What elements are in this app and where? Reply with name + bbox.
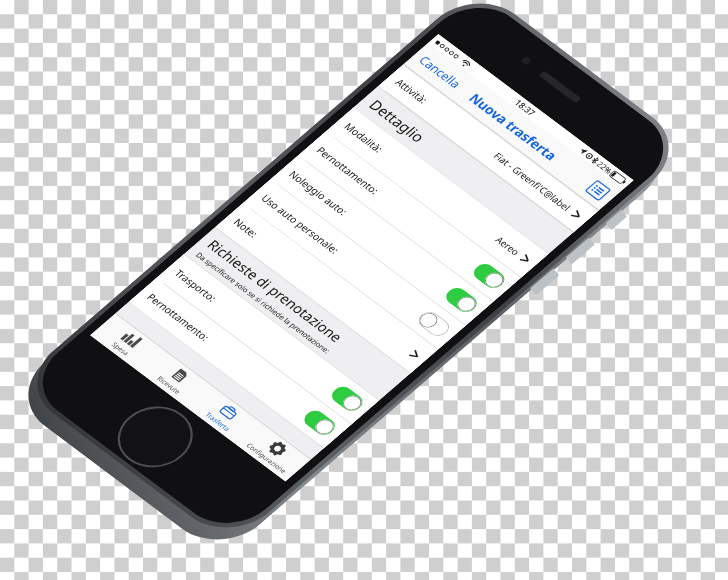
button[interactable]: Cancella (409, 47, 471, 97)
staticText: Aereo (493, 234, 523, 258)
staticText: Attività: (392, 76, 431, 106)
staticText: Trasporto: (172, 267, 220, 304)
button[interactable]: Pernottamento: (298, 132, 521, 302)
button[interactable]: Ricevute (139, 350, 213, 408)
button[interactable]: Attività: (378, 65, 598, 232)
staticText: Modalità: (341, 120, 386, 155)
button[interactable]: Trasporto: (156, 254, 379, 424)
button[interactable]: Configurazione (236, 423, 310, 481)
staticText: Note: (231, 216, 261, 240)
staticText: Nuova trasferta (465, 90, 562, 164)
button[interactable]: Interruttore (470, 261, 509, 291)
staticText: Spesa (110, 340, 131, 357)
staticText: Pernottamento: (314, 144, 382, 197)
staticText: Pernottamento: (144, 291, 213, 343)
button[interactable]: Home (105, 397, 205, 477)
button[interactable]: Lista (584, 179, 612, 202)
staticText: Richieste di prenotazione (202, 236, 347, 346)
button[interactable]: Note: (216, 203, 438, 373)
button[interactable]: Uso auto personale: (243, 180, 465, 349)
staticText: 22% (594, 159, 615, 176)
button[interactable]: Interruttore (300, 407, 339, 438)
staticText: Cancella (415, 53, 465, 91)
staticText: Fiat - Greenfi'C@label (491, 150, 574, 213)
staticText: Dettaglio (365, 95, 430, 146)
staticText: Ricevute (155, 374, 183, 396)
button[interactable]: Interruttore (414, 308, 453, 339)
staticText: 18:37 (512, 97, 539, 118)
staticText: Uso auto personale: (258, 192, 343, 256)
button[interactable]: Interruttore (328, 383, 367, 414)
button[interactable]: Trasferta (188, 386, 261, 445)
button[interactable]: Spesa (90, 314, 164, 371)
button[interactable]: Pernottamento: (129, 278, 351, 448)
staticText: Configurazione (244, 441, 289, 475)
staticText: Trasferta (203, 410, 232, 433)
staticText: Da specificare solo se si richiede la pr… (194, 250, 333, 355)
button[interactable]: Noleggio auto: (270, 156, 493, 326)
button[interactable]: Interruttore (442, 284, 481, 315)
button[interactable]: Modalità: (326, 108, 548, 278)
staticText: Noleggio auto: (286, 168, 351, 218)
